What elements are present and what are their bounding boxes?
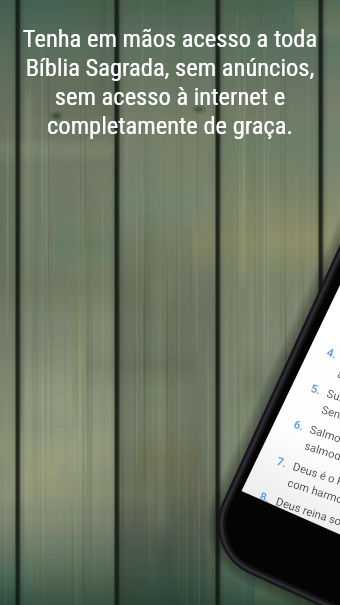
staticText: Tenha em mãos acesso a toda Bíblia Sagra… <box>0 24 340 605</box>
staticText: 8. <box>258 490 271 505</box>
staticText: 4. <box>325 346 338 361</box>
staticText: Subiu Deus entre aclamações, o Senhor ao… <box>320 387 340 466</box>
staticText: Ele escolheu para nós a nossa herança, a… <box>336 351 340 441</box>
staticText: Salmodiai a Deus, salmodiai; salmodiai a… <box>303 423 340 506</box>
staticText: 5. <box>309 382 322 397</box>
staticText: Deus reina sobre as nações; Deus está as… <box>269 495 340 578</box>
staticText: Deus é o Rei de toda a terra; com harmon… <box>286 460 340 537</box>
staticText: 7. <box>275 455 288 470</box>
staticText: 6. <box>292 418 305 433</box>
